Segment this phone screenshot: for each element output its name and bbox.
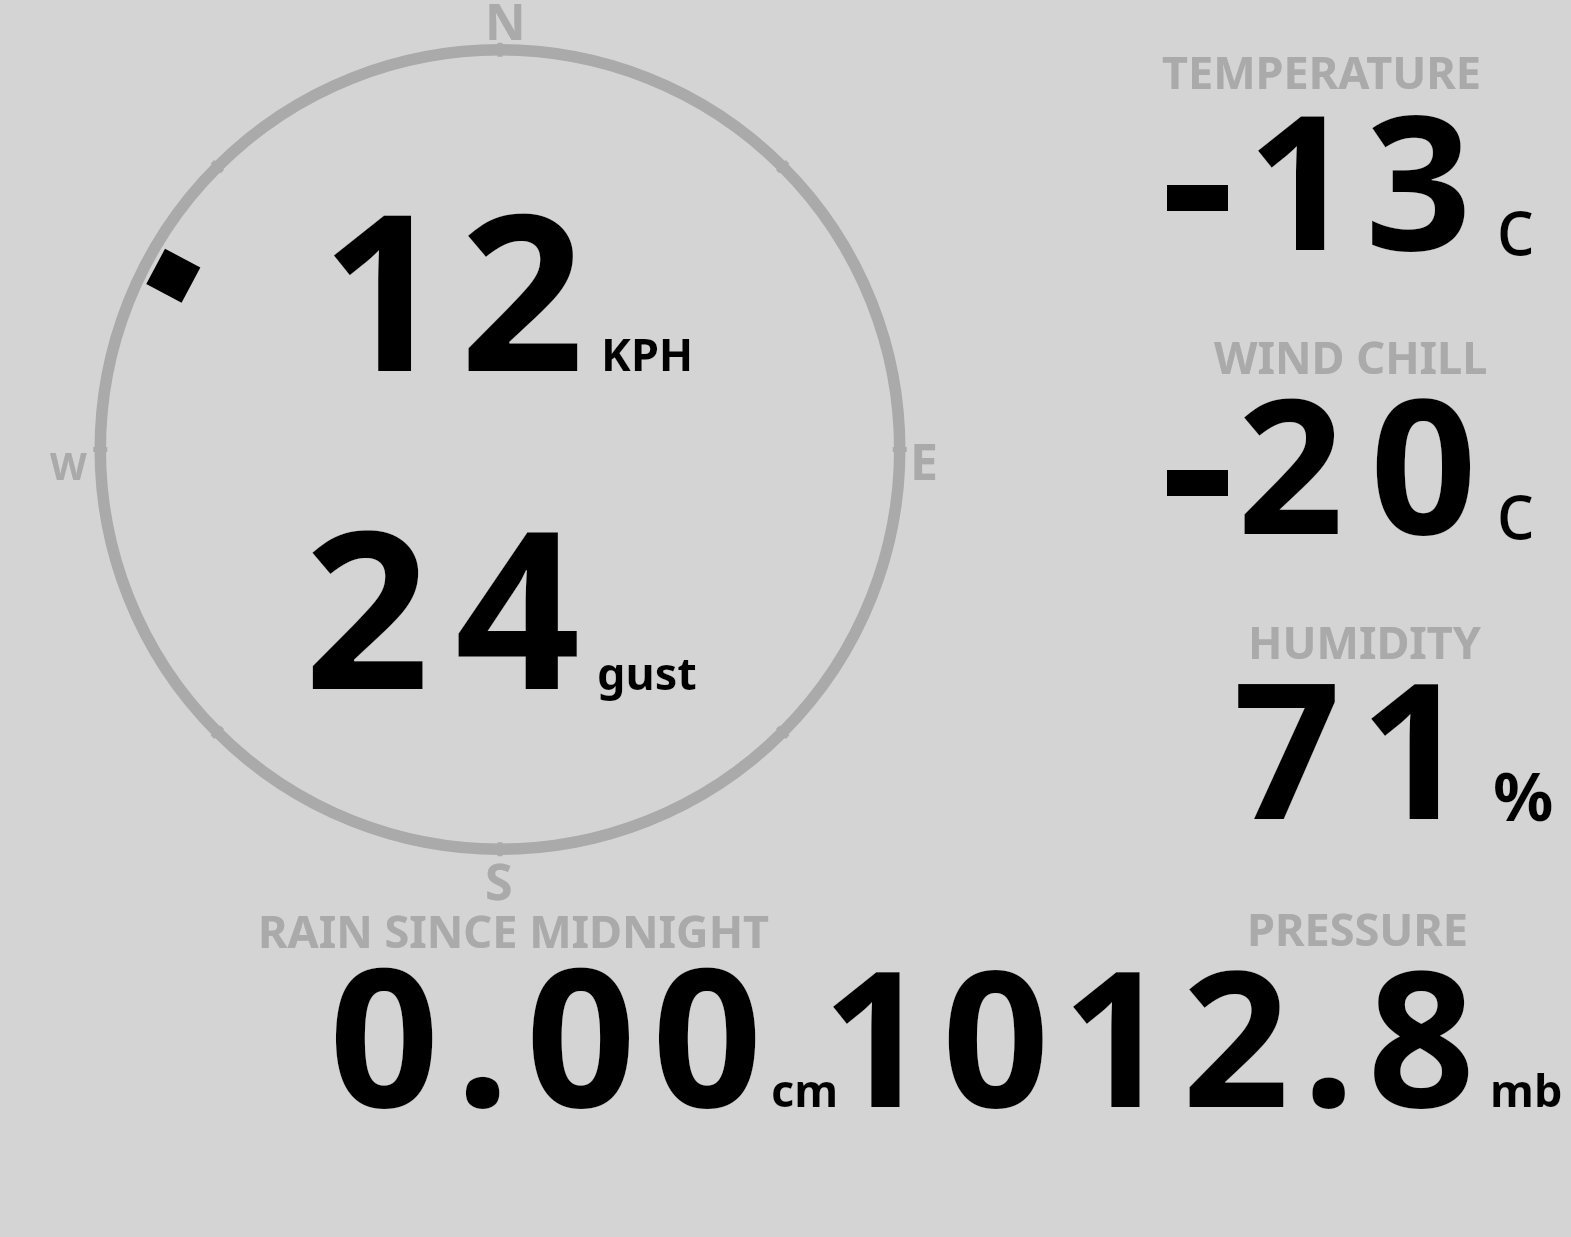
button[interactable] [850, 900, 1571, 1120]
staticText: cm [771, 1059, 839, 1120]
staticText: 0.00 [329, 901, 779, 1164]
staticText: 13 [1247, 50, 1483, 305]
staticText: RAIN SINCE MIDNIGHT [258, 900, 770, 961]
staticText: N [485, 0, 526, 55]
button[interactable] [250, 900, 850, 1120]
button[interactable] [1150, 330, 1571, 555]
staticText: TEMPERATURE [1162, 41, 1481, 102]
staticText: % [1493, 749, 1554, 840]
staticText: HUMIDITY [1248, 611, 1481, 672]
staticText: mb [1490, 1059, 1563, 1120]
staticText: WIND CHILL [1214, 326, 1488, 387]
button[interactable] [1150, 615, 1571, 840]
staticText: W [50, 439, 87, 491]
staticText: 24 [304, 454, 606, 754]
staticText: E [910, 427, 938, 495]
staticText: 1012.8 [822, 906, 1488, 1162]
staticText: PRESSURE [1247, 898, 1468, 959]
staticText: S [485, 847, 513, 915]
staticText: 12 [321, 138, 599, 435]
button[interactable] [1150, 45, 1571, 270]
button[interactable]: Wind direction compass, 12 KPH from west… [90, 40, 910, 860]
staticText: c [1496, 169, 1535, 278]
staticText: 71 [1233, 617, 1488, 874]
staticText: gust [597, 642, 697, 703]
staticText: c [1496, 453, 1535, 562]
staticText: KPH [601, 323, 694, 384]
staticText: 20 [1237, 334, 1503, 589]
